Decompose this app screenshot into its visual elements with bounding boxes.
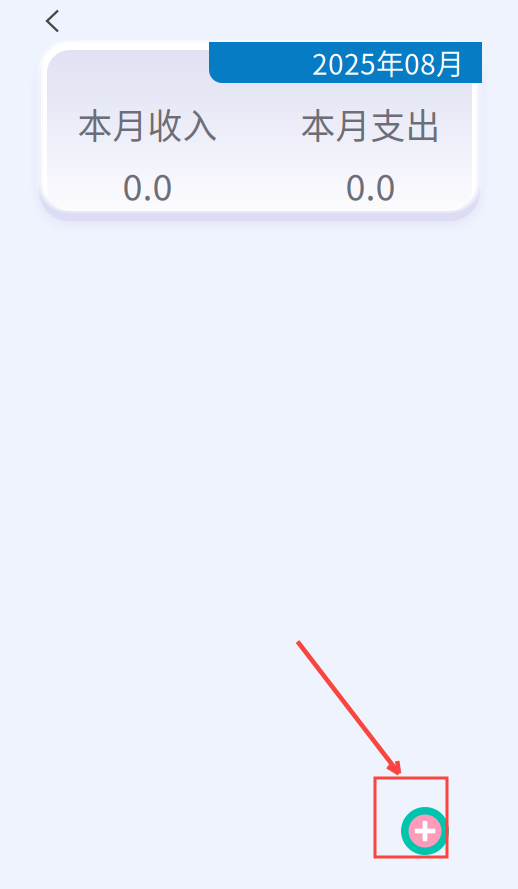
staticText: 2025年08月 [312, 42, 464, 83]
button[interactable]: 2025年08月 [209, 42, 482, 83]
staticText: 0.0 [345, 159, 395, 211]
staticText: 0.0 [122, 159, 172, 211]
button[interactable]: Add record [401, 807, 449, 855]
button[interactable]: Back [30, 0, 74, 43]
staticText: 本月支出 [300, 99, 440, 149]
staticText: 本月收入 [77, 99, 217, 149]
